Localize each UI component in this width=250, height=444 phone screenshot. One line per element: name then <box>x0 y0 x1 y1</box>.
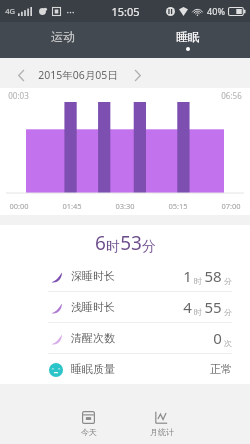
staticText: 时 <box>194 276 202 286</box>
staticText: 00:00 <box>9 201 29 211</box>
staticText: 睡眠 <box>176 29 200 44</box>
staticText: 清醒次数 <box>71 331 115 345</box>
staticText: 分 <box>224 276 232 286</box>
button[interactable]: 运动 <box>0 22 125 58</box>
staticText: 4 <box>183 297 192 317</box>
button[interactable]: 今天 <box>52 404 125 444</box>
staticText: 6 <box>95 230 106 256</box>
staticText: 月统计 <box>150 427 174 437</box>
staticText: 分 <box>224 307 232 317</box>
staticText: 次 <box>224 338 232 348</box>
button[interactable]: 睡眠质量 <box>0 354 250 384</box>
button[interactable]: Previous day <box>12 66 30 84</box>
staticText: 0 <box>213 328 222 348</box>
button[interactable]: 月统计 <box>125 404 198 444</box>
staticText: 06:56 <box>221 90 242 101</box>
staticText: 今天 <box>81 427 97 437</box>
staticText: 浅睡时长 <box>71 300 115 314</box>
staticText: 深睡时长 <box>71 269 115 283</box>
staticText: 4G <box>5 6 15 16</box>
staticText: 15:05 <box>111 4 140 19</box>
staticText: 05:15 <box>168 201 188 211</box>
staticText: 正常 <box>210 362 232 376</box>
staticText: 00:03 <box>8 90 29 101</box>
staticText: 58 <box>204 266 222 286</box>
staticText: 时 <box>106 238 120 256</box>
staticText: 53 <box>120 230 142 256</box>
staticText: 40% <box>207 5 225 17</box>
button[interactable]: 浅睡时长 <box>0 292 250 322</box>
button[interactable]: 清醒次数 <box>0 323 250 353</box>
staticText: 运动 <box>51 29 75 44</box>
staticText: 2015年06月05日 <box>38 68 118 82</box>
button[interactable]: 睡眠 <box>125 22 250 58</box>
staticText: 55 <box>204 297 222 317</box>
button[interactable]: 深睡时长 <box>0 261 250 291</box>
staticText: 分 <box>142 238 156 256</box>
staticText: 03:30 <box>115 201 135 211</box>
staticText: 时 <box>194 307 202 317</box>
staticText: 1 <box>183 266 192 286</box>
button[interactable]: Next day <box>128 66 146 84</box>
staticText: 01:45 <box>62 201 82 211</box>
staticText: 07:00 <box>221 201 241 211</box>
staticText: 睡眠质量 <box>71 362 115 376</box>
